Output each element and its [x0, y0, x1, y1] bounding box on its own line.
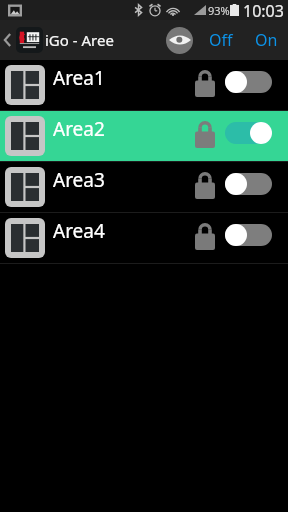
staticText: Off: [209, 29, 233, 51]
button[interactable]: Preview: [166, 27, 193, 54]
button[interactable]: Toggle: [225, 70, 272, 94]
staticText: 93%: [208, 3, 230, 18]
button[interactable]: Area2: [0, 111, 288, 161]
button[interactable]: Area3: [0, 162, 288, 212]
staticText: Area3: [53, 167, 105, 193]
button[interactable]: Toggle: [225, 223, 272, 247]
button[interactable]: Area1: [0, 60, 288, 110]
staticText: iGo - Aree: [45, 30, 114, 50]
staticText: Area4: [53, 218, 105, 244]
button[interactable]: Toggle: [225, 121, 272, 145]
button[interactable]: On: [251, 23, 282, 57]
staticText: 10:03: [243, 0, 284, 20]
button[interactable]: Back: [0, 20, 15, 60]
staticText: Area1: [53, 65, 105, 91]
button[interactable]: Area4: [0, 213, 288, 263]
staticText: On: [255, 29, 278, 51]
button[interactable]: Off: [205, 23, 237, 57]
button[interactable]: Toggle: [225, 172, 272, 196]
staticText: Area2: [53, 116, 105, 142]
